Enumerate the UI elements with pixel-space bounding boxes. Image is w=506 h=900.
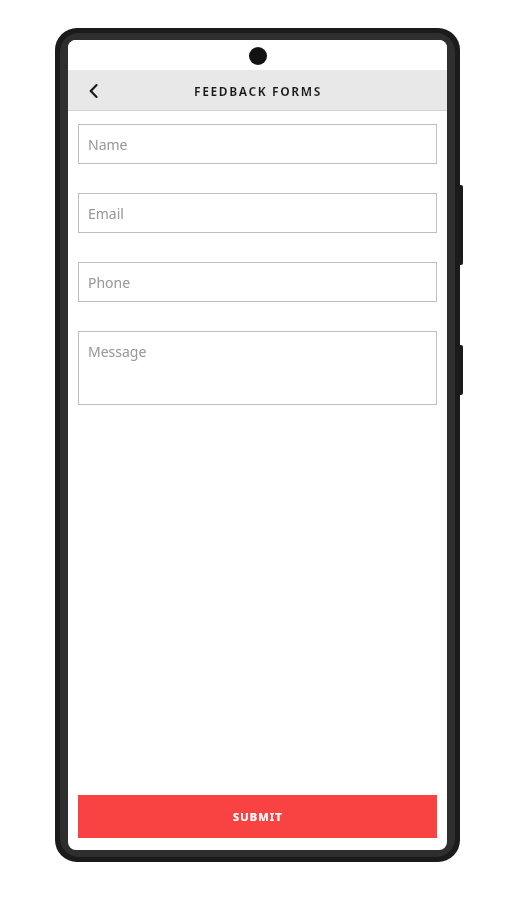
staticText: Phone [88, 273, 131, 292]
button[interactable]: Phone [78, 262, 437, 302]
button[interactable]: Message [78, 331, 437, 405]
button[interactable]: SUBMIT [78, 795, 437, 838]
button[interactable]: Name [78, 124, 437, 164]
staticText: Message [88, 342, 147, 361]
staticText: FEEDBACK FORMS [194, 83, 322, 99]
staticText: Name [88, 135, 128, 154]
button[interactable]: Email [78, 193, 437, 233]
staticText: SUBMIT [233, 809, 283, 824]
button[interactable]: Back [76, 73, 112, 109]
staticText: Email [88, 204, 124, 223]
